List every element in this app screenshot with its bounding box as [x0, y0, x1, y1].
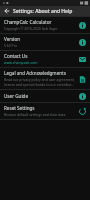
button[interactable]: ChampCalc Calculator: [0, 17, 90, 33]
staticText: User Guide: [4, 93, 29, 99]
staticText: Reset Settings: [4, 105, 35, 111]
button[interactable]: Reset Settings: [0, 103, 90, 119]
staticText: Contact Us: [4, 53, 28, 59]
staticText: Version: [4, 36, 21, 42]
button[interactable]: User Guide: [0, 90, 90, 102]
staticText: Restore default settings and clear data: [4, 112, 66, 117]
staticText: www.champcalc.com: [4, 60, 38, 65]
button[interactable]: Contact Us: [0, 51, 90, 67]
button[interactable]: Back: [3, 7, 11, 15]
staticText: ChampCalc Calculator: [4, 19, 52, 25]
button[interactable]: Legal and Acknowledgments: [0, 68, 90, 89]
staticText: Settings: About and Help: [13, 8, 73, 15]
staticText: Legal and Acknowledgments: [4, 70, 66, 76]
staticText: Copyright © 2016-2020 Itzik Sapir: [4, 26, 58, 31]
staticText: 5.60 Pro: [4, 43, 18, 48]
button[interactable]: Version: [0, 34, 90, 50]
staticText: Read our privacy policy and user agreeme…: [4, 77, 75, 87]
